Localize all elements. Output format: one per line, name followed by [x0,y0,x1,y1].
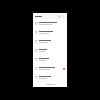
button[interactable]: More options [62,15,65,18]
button[interactable] [33,37,67,46]
button[interactable] [33,64,67,73]
button[interactable] [33,46,67,55]
button[interactable] [33,28,67,37]
button[interactable]: Search [58,15,61,18]
button[interactable] [33,73,67,82]
button[interactable] [33,19,67,28]
button[interactable] [33,55,67,64]
